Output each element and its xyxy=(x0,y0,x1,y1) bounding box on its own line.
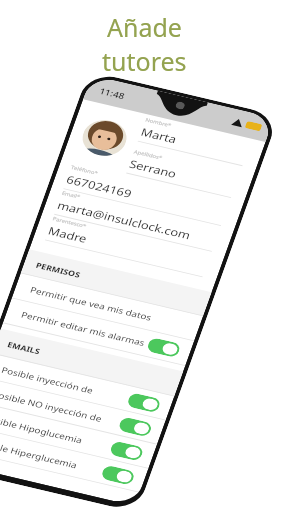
staticText: tutores xyxy=(102,44,187,78)
button[interactable]: Posible NO inyección de insulina xyxy=(0,378,166,445)
staticText: Teléfono* xyxy=(70,164,99,177)
staticText: Permitir editar mis alarmas xyxy=(20,309,150,349)
staticText: Apellidos* xyxy=(133,148,164,161)
button[interactable]: Permitir que vea mis datos xyxy=(12,273,203,341)
staticText: marta@insulclock.com xyxy=(55,197,193,243)
staticText: Posible Hipoglucemia xyxy=(0,412,113,453)
staticText: 11:48 xyxy=(98,85,127,102)
staticText: Parentesco* xyxy=(52,215,87,229)
staticText: Permitir que vea mis datos xyxy=(29,284,190,332)
staticText: 667024169 xyxy=(64,172,134,201)
staticText: Posible Hiperglucemia xyxy=(0,436,105,477)
button[interactable]: Posible Hipoglucemia xyxy=(0,402,157,469)
staticText: Añade xyxy=(107,10,182,44)
staticText: Posible inyección de insulina xyxy=(0,364,130,405)
button[interactable]: Posible Hiperglucemia xyxy=(0,426,148,493)
staticText: Marta xyxy=(139,124,179,147)
button[interactable]: Posible inyección de insulina xyxy=(0,353,174,420)
staticText: PERMISOS xyxy=(35,260,82,279)
staticText: EMAILS xyxy=(6,339,42,356)
staticText: Nombre* xyxy=(144,117,172,129)
staticText: Serrano xyxy=(127,156,179,181)
staticText: Madre xyxy=(46,223,89,246)
staticText: Email* xyxy=(61,190,81,200)
button[interactable]: Permitir editar mis alarmas xyxy=(3,298,194,366)
staticText: Posible NO inyección de insulina xyxy=(0,388,122,429)
